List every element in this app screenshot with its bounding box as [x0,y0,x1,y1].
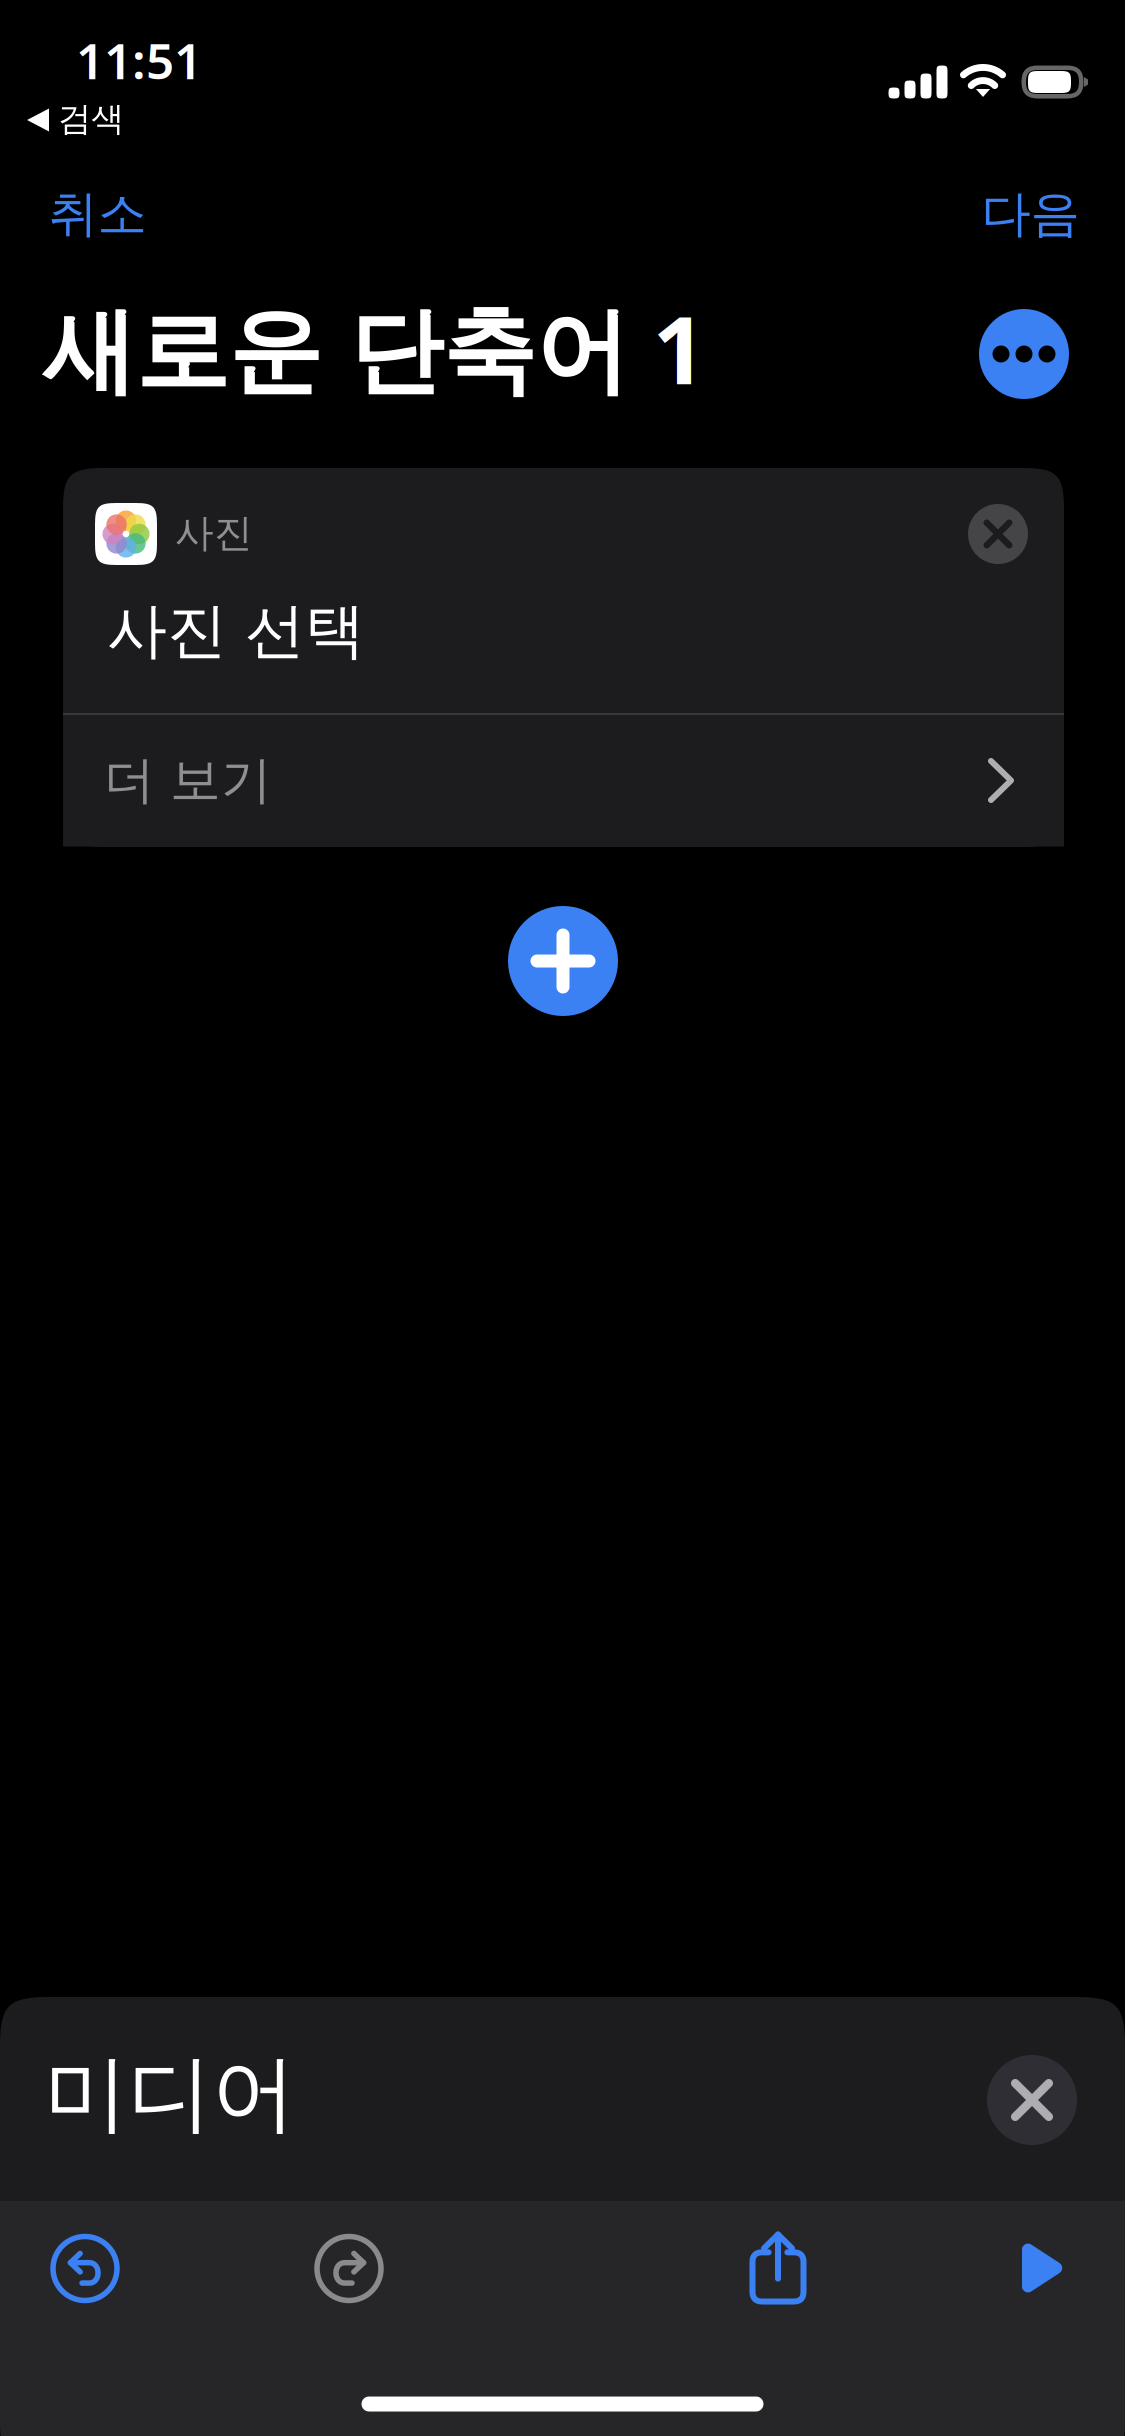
staticText: 다음 [981,184,1079,244]
button[interactable]: More options [979,309,1069,399]
staticText: 검색 [58,98,124,139]
button[interactable]: 다음 [919,162,1125,266]
staticText: 취소 [48,184,146,244]
button[interactable]: Close [987,2055,1077,2145]
staticText: 새로운 단축어 1 [42,286,705,410]
button[interactable]: Redo [299,2218,399,2318]
button[interactable]: Add action [508,906,618,1016]
button[interactable]: Remove action [968,504,1028,564]
staticText: 미디어 [44,2042,296,2146]
staticText: 더 보기 [104,749,272,812]
button[interactable]: Undo [35,2218,135,2318]
button[interactable]: Share [728,2218,828,2318]
button[interactable]: Run shortcut [996,2218,1096,2318]
staticText: 11:51 [76,27,202,93]
button[interactable]: 검색 [26,89,166,151]
button[interactable]: 취소 [0,162,208,266]
staticText: 사진 [175,509,253,557]
staticText: 사진 선택 [107,594,365,668]
button[interactable]: 더 보기 [63,715,1064,846]
